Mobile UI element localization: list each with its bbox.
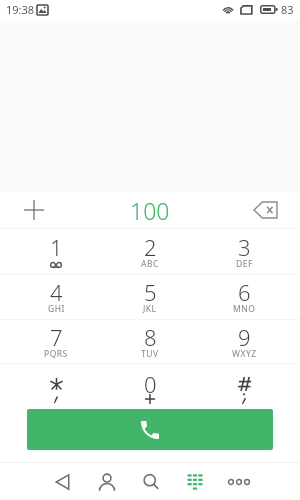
staticText: ABC [141,258,159,270]
button[interactable]: 3 [197,229,291,274]
staticText: 6 [238,277,251,307]
staticText: 83 [281,2,294,17]
button[interactable]: 9 [197,320,291,363]
button[interactable]: 5 [103,275,197,319]
staticText: 7 [50,322,63,352]
button[interactable]: 7 [9,320,103,363]
button[interactable]: Search [129,463,173,500]
button[interactable]: 1 [9,229,103,274]
staticText: JKL [143,303,157,315]
button[interactable]: More options [217,463,261,500]
staticText: 0 [144,369,157,399]
staticText: 4 [50,277,63,307]
button[interactable] [9,364,103,409]
staticText: 5 [144,277,157,307]
staticText: 2 [144,232,157,262]
staticText: 100 [130,195,170,226]
button[interactable]: Call [27,409,273,450]
staticText: 19:38 [6,2,35,17]
staticText: DEF [236,258,253,270]
button[interactable]: Contacts [85,463,129,500]
staticText: MNO [233,303,256,315]
button[interactable]: Backspace [232,192,300,228]
button[interactable]: Add to contacts [0,192,68,228]
button[interactable]: 6 [197,275,291,319]
button[interactable]: 8 [103,320,197,363]
staticText: WXYZ [232,348,257,360]
staticText: PQRS [44,348,68,360]
staticText: 3 [238,232,251,262]
staticText: TUV [141,348,159,360]
button[interactable]: 0 [103,364,197,409]
button[interactable]: Dialpad [173,463,217,500]
button[interactable]: Back [41,463,85,500]
staticText: 8 [144,322,157,352]
button[interactable]: 2 [103,229,197,274]
button[interactable]: 4 [9,275,103,319]
button[interactable] [197,364,291,409]
staticText: 1 [50,232,63,262]
staticText: 9 [238,322,251,352]
staticText: GHI [48,303,65,315]
